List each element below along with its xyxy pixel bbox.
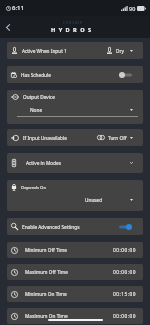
button[interactable]: Active in Modes xyxy=(7,153,143,173)
staticText: Output Device xyxy=(23,94,55,100)
staticText: Turn Off xyxy=(108,135,127,141)
staticText: Minimum Off Time xyxy=(25,247,67,253)
staticText: 00:00:00 xyxy=(113,269,136,275)
staticText: Dry xyxy=(116,48,124,54)
button[interactable]: Maximum Off Time xyxy=(7,264,143,280)
staticText: 00:00:00 xyxy=(113,247,136,253)
button[interactable]: Output Device xyxy=(7,90,143,124)
staticText: 00:00:00 xyxy=(113,313,136,319)
button[interactable]: Toggle on xyxy=(119,224,132,230)
staticText: 6:11 xyxy=(12,4,24,12)
button[interactable]: Active When Input 1 xyxy=(7,42,143,59)
staticText: Active When Input 1 xyxy=(22,48,67,54)
staticText: CORSAIR xyxy=(63,21,84,25)
staticText: 90 xyxy=(129,5,136,12)
button[interactable]: Minimum On Time xyxy=(7,286,143,302)
button[interactable]: Has Schedule xyxy=(7,66,143,83)
staticText: Active in Modes xyxy=(26,160,62,166)
button[interactable]: Toggle off xyxy=(119,72,132,78)
staticText: If Input Unavailable xyxy=(23,135,67,141)
staticText: Has Schedule xyxy=(21,72,51,78)
button[interactable]: Enable Advanced Settings xyxy=(7,218,143,235)
button[interactable]: Depends On xyxy=(7,180,143,211)
staticText: Depends On xyxy=(21,184,47,190)
button[interactable]: Back xyxy=(1,21,14,34)
staticText: Maximum Off Time xyxy=(25,269,68,275)
staticText: None xyxy=(30,107,43,113)
staticText: Enable Advanced Settings xyxy=(22,224,80,230)
button[interactable]: Maximum On Time xyxy=(7,308,143,324)
staticText: Maximum On Time xyxy=(25,313,68,319)
staticText: HYDROS xyxy=(51,26,95,34)
staticText: Unused xyxy=(85,197,103,203)
button[interactable]: If Input Unavailable xyxy=(7,129,143,146)
button[interactable]: Minimum Off Time xyxy=(7,242,143,258)
staticText: 00:15:00 xyxy=(113,291,136,297)
staticText: Minimum On Time xyxy=(25,291,67,297)
